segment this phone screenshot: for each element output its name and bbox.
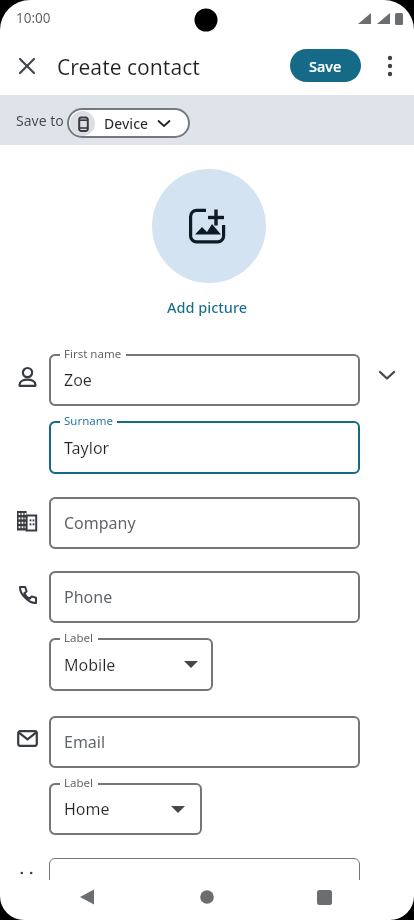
button[interactable]: Add picture xyxy=(147,293,267,321)
button[interactable] xyxy=(191,881,223,913)
staticText: Label xyxy=(64,775,94,791)
staticText: Mobile xyxy=(64,654,116,676)
button[interactable] xyxy=(13,52,41,80)
staticText: Zoe xyxy=(64,369,92,391)
staticText: Phone xyxy=(64,586,113,608)
button[interactable]: Company xyxy=(49,497,360,549)
staticText: Save xyxy=(309,56,342,76)
button[interactable]: Email xyxy=(49,716,360,768)
button[interactable]: Home xyxy=(49,783,202,835)
staticText: Device xyxy=(104,114,149,133)
button[interactable]: Device xyxy=(67,108,190,138)
staticText: Email xyxy=(64,731,106,753)
staticText: Company xyxy=(64,512,136,534)
staticText: Add picture xyxy=(167,297,248,317)
staticText: First name xyxy=(64,346,122,362)
staticText: 10:00 xyxy=(16,9,51,27)
staticText: Surname xyxy=(64,413,113,429)
staticText: Save to xyxy=(16,111,64,130)
staticText: Taylor xyxy=(64,437,110,459)
staticText: Create contact xyxy=(57,53,200,82)
button[interactable]: Mobile xyxy=(49,638,213,691)
button[interactable]: Phone xyxy=(49,571,360,623)
staticText: Home xyxy=(64,798,110,820)
button[interactable] xyxy=(308,881,340,913)
button[interactable] xyxy=(378,52,402,80)
button[interactable]: Taylor xyxy=(49,421,360,474)
button[interactable] xyxy=(71,881,103,913)
button[interactable]: Zoe xyxy=(49,354,360,406)
button[interactable]: Save xyxy=(290,49,361,82)
staticText: Label xyxy=(64,630,94,646)
button[interactable] xyxy=(374,362,400,388)
button[interactable] xyxy=(152,169,266,283)
